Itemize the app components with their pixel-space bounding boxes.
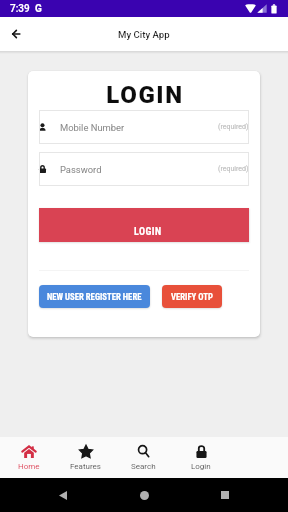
- button[interactable]: VERIFY OTP: [162, 285, 222, 308]
- staticText: 7:39: [10, 3, 30, 15]
- staticText: Password: [60, 164, 102, 175]
- button[interactable]: Recent apps: [216, 486, 234, 504]
- button[interactable]: Login: [172, 437, 230, 478]
- button[interactable]: Home: [135, 486, 153, 504]
- staticText: NEW USER REGISTER HERE: [47, 292, 142, 302]
- button[interactable]: LOGIN: [39, 208, 249, 242]
- staticText: Search: [131, 462, 156, 471]
- staticText: Mobile Number: [60, 122, 125, 133]
- staticText: (required): [218, 165, 249, 173]
- staticText: G: [35, 3, 42, 15]
- button[interactable]: Back: [5, 23, 27, 45]
- staticText: LOGIN: [134, 226, 162, 238]
- button[interactable]: Search: [114, 437, 172, 478]
- button[interactable]: Features: [57, 437, 114, 478]
- staticText: My City App: [118, 29, 170, 40]
- staticText: VERIFY OTP: [171, 292, 213, 302]
- staticText: (required): [218, 123, 249, 131]
- staticText: Home: [18, 462, 40, 471]
- button[interactable]: NEW USER REGISTER HERE: [39, 285, 150, 308]
- button[interactable]: Password: [39, 152, 249, 186]
- button[interactable]: Back: [54, 486, 72, 504]
- button[interactable]: Home: [0, 437, 57, 478]
- staticText: Features: [70, 462, 101, 471]
- staticText: LOGIN: [29, 81, 260, 109]
- button[interactable]: Mobile Number: [39, 110, 249, 144]
- staticText: Login: [191, 462, 211, 471]
